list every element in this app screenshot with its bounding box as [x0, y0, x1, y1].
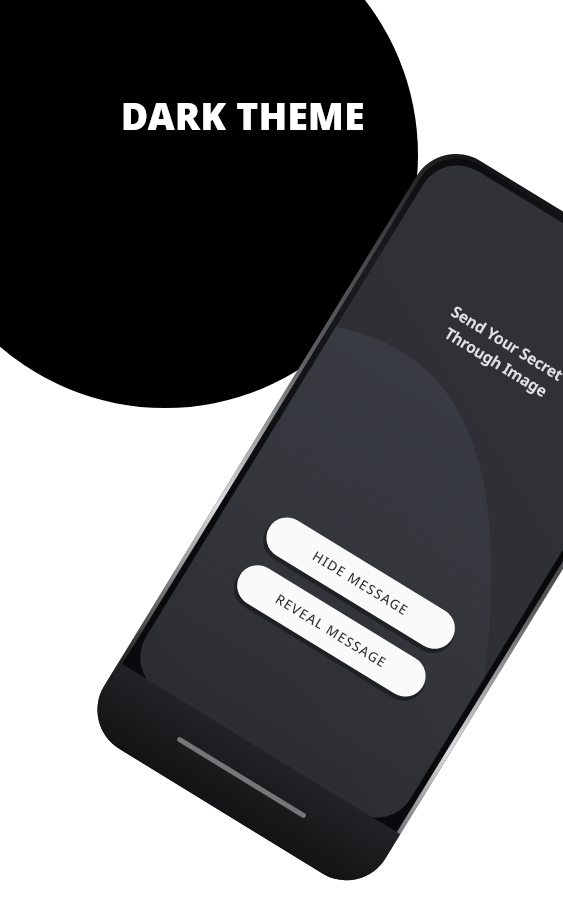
button[interactable]: Dark theme feature screenshot: [0, 0, 563, 900]
